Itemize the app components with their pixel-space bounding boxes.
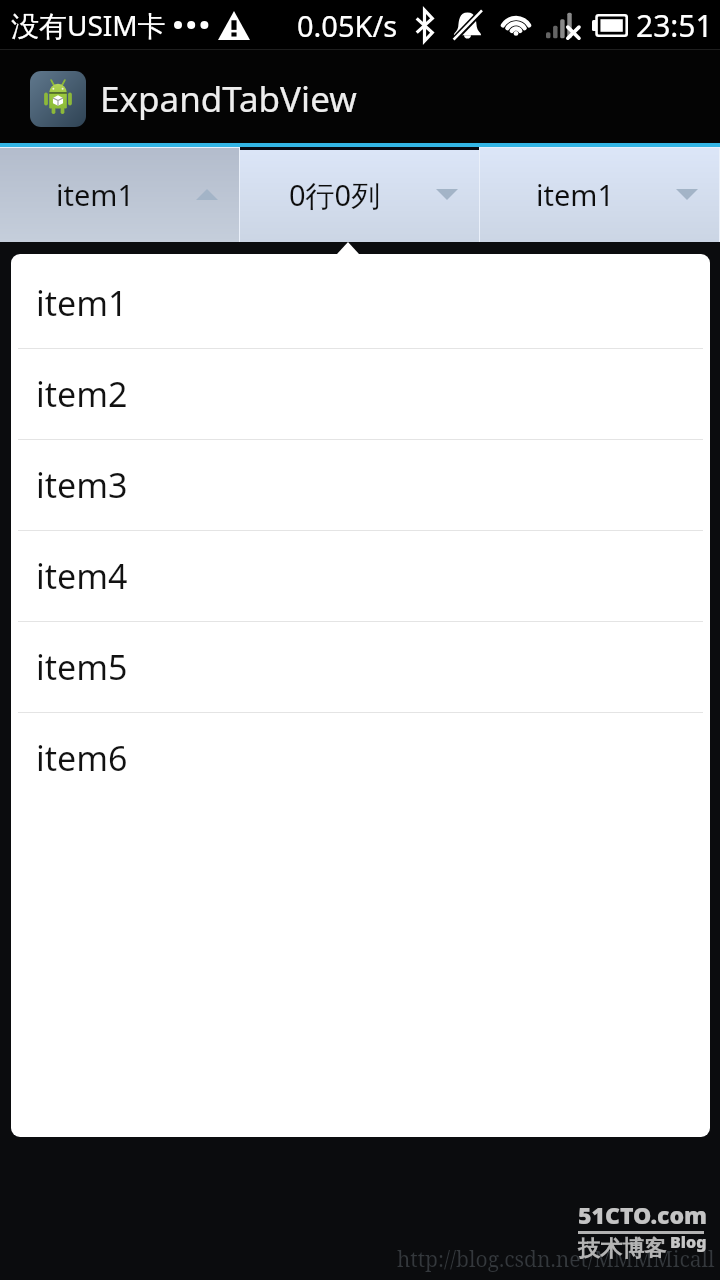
staticText: http://blog.csdn.net/MMMMicall <box>397 1245 720 1274</box>
staticText: ExpandTabView <box>100 75 357 123</box>
staticText: item1 <box>536 175 615 214</box>
staticText: Blog <box>670 1231 707 1253</box>
staticText: 0行0列 <box>289 175 381 215</box>
staticText: item4 <box>36 553 128 599</box>
button[interactable]: item1 <box>0 147 240 242</box>
staticText: 23:51 <box>636 5 713 46</box>
button[interactable]: item5 <box>11 622 710 713</box>
button[interactable]: item4 <box>11 531 710 622</box>
button[interactable]: item3 <box>11 440 710 531</box>
staticText: item5 <box>36 644 128 690</box>
staticText: item2 <box>36 371 128 417</box>
button[interactable]: item1 <box>11 258 710 349</box>
staticText: item1 <box>36 280 128 326</box>
button[interactable]: item1 <box>480 147 720 242</box>
button[interactable]: 0行0列 <box>240 147 480 242</box>
staticText: item6 <box>36 735 128 781</box>
staticText: item1 <box>56 175 135 214</box>
button[interactable]: item6 <box>11 713 710 804</box>
staticText: item3 <box>36 462 128 508</box>
staticText: 0.05K/s <box>297 6 398 45</box>
button[interactable]: item2 <box>11 349 710 440</box>
staticText: 没有USIM卡 <box>11 6 166 44</box>
staticText: 技术博客 <box>578 1235 666 1263</box>
staticText: 51CTO.com <box>578 1199 708 1230</box>
